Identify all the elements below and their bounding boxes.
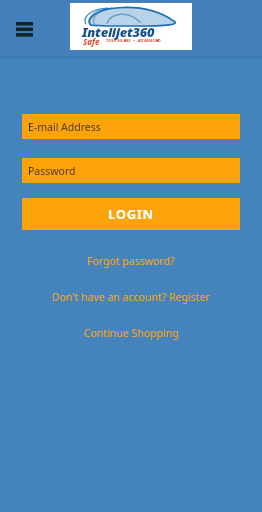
staticText: Safe (83, 36, 100, 47)
button[interactable]: Continue Shopping (22, 325, 240, 341)
staticText: TOUCHLESS • ADVANCED (106, 38, 161, 43)
staticText: LOGIN (108, 205, 154, 223)
button[interactable]: Open navigation menu (6, 10, 42, 46)
staticText: Password (28, 164, 76, 178)
button[interactable]: Don't have an account? Register (22, 289, 240, 305)
button[interactable]: Intelijet360 logo (70, 3, 192, 50)
staticText: Continue Shopping (84, 326, 179, 340)
button[interactable]: LOGIN (22, 198, 240, 230)
staticText: E-mail Address (28, 120, 101, 134)
button[interactable]: Forgot password? (22, 253, 240, 269)
staticText: Intelijet360 (82, 23, 155, 41)
staticText: Forgot password? (87, 254, 175, 268)
staticText: Don't have an account? Register (52, 290, 210, 304)
button[interactable]: E-mail Address (22, 114, 240, 139)
button[interactable]: Password (22, 158, 240, 183)
